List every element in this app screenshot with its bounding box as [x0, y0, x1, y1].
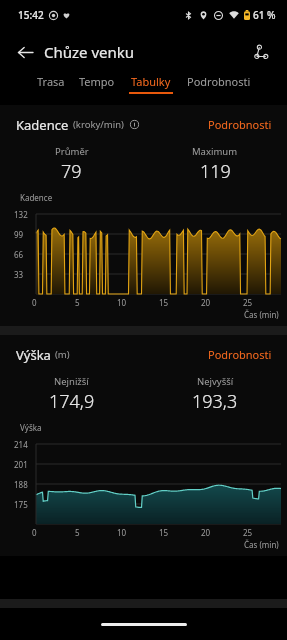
staticText: 175 [14, 499, 28, 510]
staticText: 33 [14, 269, 24, 280]
staticText: Kadence [16, 116, 69, 134]
staticText: 214 [14, 439, 28, 450]
staticText: 15:42 [18, 8, 44, 22]
button[interactable]: Podrobnosti [206, 345, 274, 364]
staticText: 25 [243, 297, 253, 308]
button[interactable]: Info [128, 118, 141, 131]
staticText: Nejvyšší [197, 375, 234, 388]
button[interactable]: Trasa [30, 74, 72, 92]
button[interactable]: Share [245, 36, 277, 68]
staticText: Tempo [79, 74, 115, 89]
staticText: 5 [75, 527, 80, 538]
staticText: 66 [14, 249, 24, 260]
button[interactable]: Tempo [72, 74, 122, 92]
staticText: Nejnižší [54, 375, 89, 388]
staticText: 174,9 [49, 389, 95, 414]
staticText: Tabulky [131, 74, 171, 89]
button[interactable]: Podrobnosti [180, 74, 258, 92]
staticText: 20 [201, 297, 211, 308]
staticText: Čas (min) [244, 309, 279, 320]
staticText: Podrobnosti [187, 74, 251, 89]
staticText: 25 [243, 527, 253, 538]
staticText: (m) [55, 348, 70, 361]
staticText: 119 [200, 159, 231, 184]
staticText: 0 [32, 527, 37, 538]
staticText: 10 [117, 527, 127, 538]
staticText: Chůze venku [44, 42, 135, 62]
staticText: 10 [117, 297, 127, 308]
staticText: 132 [14, 209, 28, 220]
staticText: 79 [61, 159, 82, 184]
staticText: 15 [159, 527, 169, 538]
staticText: Výška [20, 422, 42, 433]
staticText: 188 [14, 479, 28, 490]
staticText: Podrobnosti [208, 117, 272, 132]
button[interactable]: Podrobnosti [206, 115, 274, 134]
staticText: 20 [201, 527, 211, 538]
staticText: Čas (min) [244, 539, 279, 550]
staticText: (kroky/min) [73, 118, 124, 131]
staticText: Průměr [55, 145, 89, 158]
staticText: 193,3 [192, 389, 238, 414]
staticText: 61 % [253, 8, 276, 22]
staticText: Maximum [192, 145, 238, 158]
staticText: Podrobnosti [208, 347, 272, 362]
button[interactable]: Back [8, 35, 42, 69]
staticText: 5 [75, 297, 80, 308]
button[interactable]: Tabulky [122, 74, 180, 94]
staticText: Kadence [20, 192, 53, 203]
staticText: Výška [16, 346, 51, 364]
staticText: 0 [32, 297, 37, 308]
staticText: 15 [159, 297, 169, 308]
staticText: 201 [14, 459, 28, 470]
staticText: 99 [14, 229, 24, 240]
staticText: Trasa [37, 74, 65, 89]
